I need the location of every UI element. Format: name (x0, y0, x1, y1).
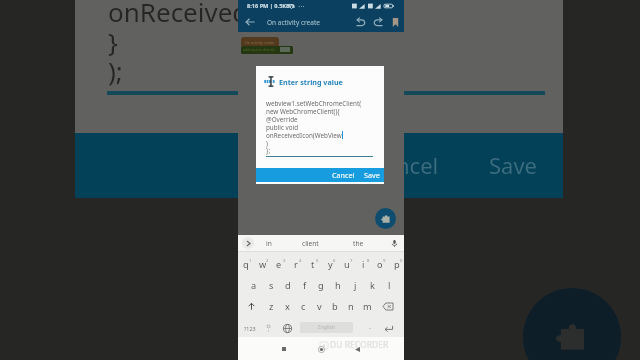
staticText: 8:16 PM | 0.5KB/s (247, 2, 295, 10)
staticText: the (353, 239, 364, 248)
button[interactable]: p (389, 255, 405, 273)
button[interactable]: Cancel (332, 170, 355, 180)
button[interactable]: English (300, 322, 353, 333)
button[interactable]: h (330, 276, 346, 294)
staticText: o (377, 258, 383, 271)
button[interactable]: Enter (379, 319, 397, 337)
button[interactable]: Change language (278, 319, 296, 337)
staticText: 1 (249, 258, 252, 264)
button[interactable]: Save (387, 14, 403, 30)
button[interactable]: More suggestions (242, 237, 254, 249)
staticText: ⋯ (298, 2, 304, 9)
button[interactable]: ?123 (241, 319, 259, 337)
staticText: l (388, 279, 391, 292)
button[interactable]: w (255, 255, 271, 273)
staticText: new WebChromeClient(){ (266, 107, 340, 116)
button[interactable]: c (295, 297, 311, 315)
button[interactable]: On activity create (241, 37, 279, 46)
staticText: On activity create (245, 40, 275, 45)
staticText: w (259, 258, 267, 271)
staticText: 4 (299, 258, 302, 264)
button[interactable]: j (347, 276, 363, 294)
button[interactable]: e (271, 255, 287, 273)
button[interactable]: y (322, 255, 338, 273)
staticText: d (285, 279, 291, 292)
staticText: 9 (383, 258, 386, 264)
staticText: i (362, 258, 365, 271)
button[interactable]: m (359, 297, 375, 315)
button[interactable]: Undo (351, 13, 369, 31)
staticText: 5 (316, 258, 319, 264)
staticText: m (363, 300, 372, 313)
staticText: add source directly (243, 47, 275, 52)
button[interactable]: Recents (276, 341, 292, 357)
staticText: ncel (396, 150, 439, 180)
button[interactable]: l (381, 276, 397, 294)
staticText: @Override (266, 115, 298, 124)
button[interactable]: Redo (369, 13, 387, 31)
staticText: client (302, 239, 319, 248)
button[interactable]: Backspace (379, 297, 397, 315)
button[interactable]: d (280, 276, 296, 294)
button[interactable]: a (246, 276, 262, 294)
staticText: x (285, 300, 290, 313)
button[interactable]: g (313, 276, 329, 294)
staticText: 6 (333, 258, 336, 264)
staticText: 8 (367, 258, 370, 264)
staticText: s (269, 279, 274, 292)
staticText: 3 (283, 258, 286, 264)
staticText: On activity create (267, 18, 320, 27)
staticText: English (318, 324, 336, 331)
button[interactable]: Save (364, 170, 380, 180)
staticText: 7 (350, 258, 353, 264)
staticText: e (276, 258, 282, 271)
button[interactable]: Comma (259, 319, 277, 337)
staticText: b (332, 300, 338, 313)
staticText: ?123 (244, 325, 256, 332)
staticText: ) (266, 139, 268, 148)
button[interactable]: f (297, 276, 313, 294)
staticText: g (318, 279, 324, 292)
button[interactable]: in (255, 235, 283, 251)
button[interactable]: the (344, 235, 372, 251)
button[interactable]: x (279, 297, 295, 315)
staticText: a (251, 279, 257, 292)
staticText: DU RECORDER (330, 339, 389, 351)
button[interactable]: b (327, 297, 343, 315)
staticText: public void (266, 123, 299, 132)
staticText: f (303, 279, 307, 292)
staticText: } (108, 24, 118, 59)
button[interactable]: n (343, 297, 359, 315)
button[interactable]: Add block (375, 208, 396, 229)
staticText: Save (489, 150, 538, 180)
staticText: c (301, 300, 306, 313)
button[interactable] (241, 46, 293, 54)
staticText: webview1.setWebChromeClient( (266, 99, 362, 108)
button[interactable]: client (296, 235, 324, 251)
button[interactable]: k (364, 276, 380, 294)
button[interactable]: Shift (242, 297, 260, 315)
button[interactable]: r (288, 255, 304, 273)
button[interactable]: q (238, 255, 254, 273)
staticText: }; (266, 146, 271, 155)
button[interactable]: o (372, 255, 388, 273)
button[interactable]: i (355, 255, 371, 273)
staticText: . (369, 322, 371, 332)
button[interactable]: Back (242, 14, 258, 30)
button[interactable]: Back (349, 341, 365, 357)
button[interactable]: z (263, 297, 279, 315)
button[interactable]: s (263, 276, 279, 294)
button[interactable]: Voice input (388, 237, 400, 249)
staticText: t (311, 258, 315, 271)
staticText: v (317, 300, 322, 313)
staticText: z (269, 300, 274, 313)
staticText: h (335, 279, 341, 292)
staticText: p (394, 258, 400, 271)
button[interactable]: Home (313, 341, 329, 357)
button[interactable]: u (339, 255, 355, 273)
staticText: Enter string value (279, 77, 343, 87)
staticText: in (266, 239, 272, 248)
button[interactable]: v (311, 297, 327, 315)
button[interactable]: t (305, 255, 321, 273)
